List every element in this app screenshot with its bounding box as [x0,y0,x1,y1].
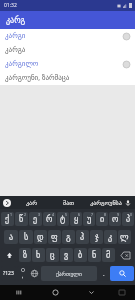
button[interactable]: კ [104,230,117,244]
staticText: 3 [38,212,41,217]
staticText: ლ [120,233,129,242]
button[interactable]: ?123 [1,266,16,281]
staticText: ჰ [80,233,85,242]
staticText: კარგი [5,32,26,40]
staticText: ხ [36,251,41,260]
button[interactable]: გ [62,230,75,244]
button[interactable]: ც [46,248,59,262]
button[interactable]: ა [4,230,18,244]
staticText: ტ [60,215,66,224]
staticText: ნ [92,251,97,260]
staticText: კარგ [6,16,26,25]
staticText: 0 [130,212,133,217]
button[interactable]: Voice input [124,199,132,207]
button[interactable]: ხ [32,248,45,262]
button[interactable]: კარგ [0,11,135,29]
staticText: კარგა [5,46,26,54]
button[interactable]: წ [15,212,28,226]
staticText: კარგოუნი, ზარმაცა [5,73,70,83]
staticText: ქართული [56,271,82,277]
button[interactable]: ე [29,212,42,226]
button[interactable]: Backspace [116,248,134,262]
staticText: 7 [91,212,94,217]
button[interactable]: Remove suggestion [123,61,130,68]
staticText: ფ [51,233,58,242]
button[interactable]: კარგა [0,43,135,57]
button[interactable]: კარგილო [0,57,135,71]
staticText: მათ [63,199,74,206]
staticText: კარგოუნსა [90,199,122,206]
staticText: დ [37,233,44,242]
staticText: რ [46,215,53,224]
staticText: უ [87,215,92,224]
button[interactable]: დ [34,230,47,244]
staticText: ო [112,215,119,224]
button[interactable]: Keyboard layout [109,285,135,300]
button[interactable]: ტ [57,212,69,226]
button[interactable]: Remove suggestion [123,33,130,40]
staticText: კარგილო [5,60,39,68]
staticText: მ [106,251,111,260]
staticText: ქ [5,215,10,224]
button[interactable]: ი [96,212,108,226]
staticText: კ [108,233,113,242]
button[interactable]: ყ [70,212,82,226]
button[interactable]: ო [109,212,121,226]
button[interactable]: ზ [19,248,31,262]
staticText: ს [24,233,29,242]
button[interactable]: უ [83,212,95,226]
staticText: ბ [78,251,83,260]
button[interactable]: ჰ [76,230,89,244]
button[interactable]: ს [19,230,33,244]
staticText: 5 [65,212,68,217]
button[interactable]: Expand toolbar [3,199,11,207]
staticText: ჯ [95,233,99,242]
button[interactable]: Emoji and comma [17,266,28,281]
staticText: ?123 [3,270,14,277]
button[interactable]: კარგი [0,29,135,43]
staticText: წ [19,215,24,224]
button[interactable]: ნ [88,248,101,262]
button[interactable]: ბ [74,248,87,262]
button[interactable]: Search [110,266,134,281]
button[interactable]: ქ [1,212,14,226]
staticText: ი [100,215,105,224]
button[interactable]: რ [43,212,56,226]
button[interactable]: Shift [1,248,18,262]
staticText: ც [50,251,55,260]
staticText: ე [33,215,38,224]
button[interactable]: . [98,266,109,281]
button[interactable]: პ [122,212,134,226]
button[interactable]: ლ [118,230,131,244]
staticText: ა [9,233,14,242]
button[interactable]: ვ [60,248,73,262]
button[interactable]: ფ [48,230,61,244]
staticText: კარ [26,199,37,206]
staticText: ვ [64,251,69,260]
staticText: ზ [23,251,28,260]
staticText: ყ [74,215,79,224]
button[interactable]: Recent apps [0,285,37,300]
staticText: 01:32 [4,2,17,9]
staticText: 2 [24,212,27,217]
button[interactable]: კარგოუნი, ზარმაცა [0,71,135,85]
staticText: 8 [104,212,107,217]
button[interactable]: მათ [50,196,87,209]
staticText: პ [126,215,131,224]
button[interactable]: Back [73,285,109,300]
button[interactable]: ქართული [41,266,97,281]
staticText: 9 [117,212,120,217]
button[interactable]: კარგოუნსა [87,196,124,209]
staticText: . [103,270,105,278]
button[interactable]: ჯ [90,230,103,244]
staticText: გ [66,233,71,242]
staticText: , [22,273,24,280]
staticText: 6 [78,212,81,217]
button[interactable]: კარ [13,196,50,209]
button[interactable]: Home [37,285,73,300]
button[interactable]: Change language [29,266,40,281]
button[interactable]: მ [102,248,115,262]
staticText: 1 [10,212,13,217]
staticText: 4 [52,212,55,217]
